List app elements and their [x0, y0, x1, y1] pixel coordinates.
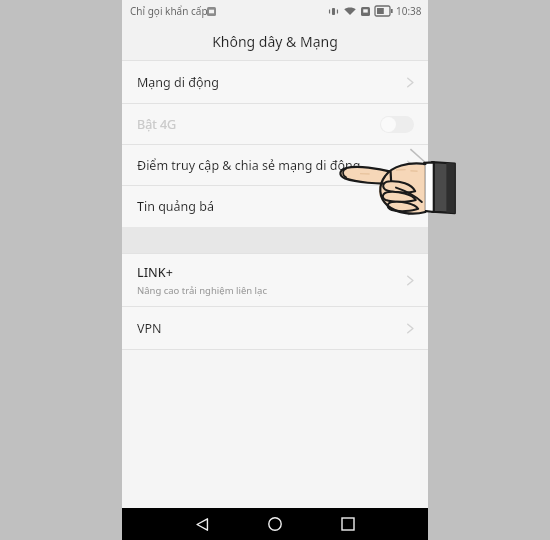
button[interactable]: Bật 4G — [122, 104, 428, 144]
staticText: VPN — [137, 320, 405, 337]
staticText: Không dây & Mạng — [212, 32, 338, 51]
staticText: 10:38 — [396, 4, 422, 18]
other: Bật 4G toggle — [380, 116, 414, 133]
button[interactable]: Recent apps — [331, 508, 365, 540]
button[interactable]: Home — [258, 508, 292, 540]
staticText: LINK+ — [137, 264, 173, 281]
button[interactable]: VPN — [122, 307, 428, 349]
staticText: Nâng cao trải nghiệm liên lạc — [137, 284, 267, 297]
button[interactable]: Điểm truy cập & chia sẻ mạng di động — [122, 145, 428, 185]
staticText: Mạng di động — [137, 74, 405, 91]
button[interactable]: LINK+ — [122, 254, 428, 306]
staticText: Điểm truy cập & chia sẻ mạng di động — [137, 157, 405, 174]
staticText: Chỉ gọi khẩn cấp — [130, 4, 208, 18]
button[interactable]: Mạng di động — [122, 61, 428, 103]
button[interactable]: Tin quảng bá — [122, 186, 428, 227]
button[interactable]: Back — [185, 508, 219, 540]
staticText: Bật 4G — [137, 116, 380, 133]
staticText: Tin quảng bá — [137, 198, 416, 215]
